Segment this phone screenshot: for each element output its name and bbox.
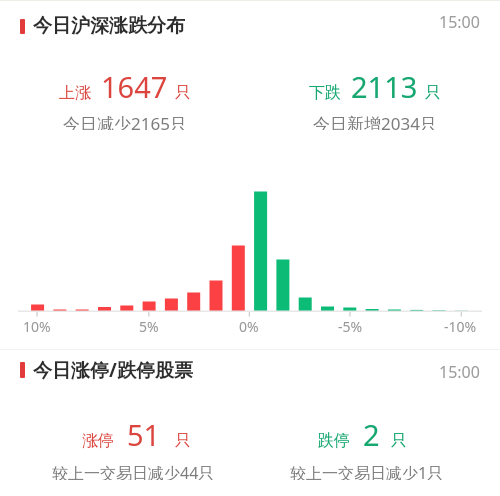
staticText: 上涨 bbox=[59, 83, 91, 103]
staticText: 较上一交易日减少44只 bbox=[52, 462, 215, 480]
staticText: 今日减少2165只 bbox=[63, 112, 187, 130]
staticText: -10% bbox=[444, 317, 477, 335]
staticText: 15:00 bbox=[439, 361, 480, 383]
staticText: 51 bbox=[127, 415, 161, 449]
button[interactable]: 今日涨停/跌停股票 bbox=[0, 352, 500, 388]
staticText: 跌停 bbox=[318, 431, 350, 451]
staticText: 只 bbox=[391, 431, 407, 451]
staticText: 只 bbox=[175, 431, 191, 451]
staticText: 只 bbox=[425, 83, 441, 103]
staticText: 5% bbox=[139, 317, 159, 335]
staticText: 下跌 bbox=[309, 83, 341, 103]
staticText: 10% bbox=[23, 317, 51, 335]
staticText: 今日新增2034只 bbox=[313, 112, 437, 130]
staticText: 2113 bbox=[351, 67, 418, 103]
staticText: 1647 bbox=[101, 67, 168, 103]
staticText: 较上一交易日减少1只 bbox=[290, 462, 444, 480]
staticText: 只 bbox=[175, 83, 191, 103]
staticText: 今日涨停/跌停股票 bbox=[33, 357, 193, 383]
staticText: -5% bbox=[338, 317, 363, 335]
button[interactable]: 今日沪深涨跌分布 bbox=[0, 8, 500, 44]
staticText: 15:00 bbox=[439, 11, 480, 33]
staticText: 2 bbox=[363, 415, 380, 449]
staticText: 涨停 bbox=[82, 431, 114, 451]
staticText: 今日沪深涨跌分布 bbox=[33, 14, 185, 38]
staticText: 0% bbox=[239, 317, 259, 335]
